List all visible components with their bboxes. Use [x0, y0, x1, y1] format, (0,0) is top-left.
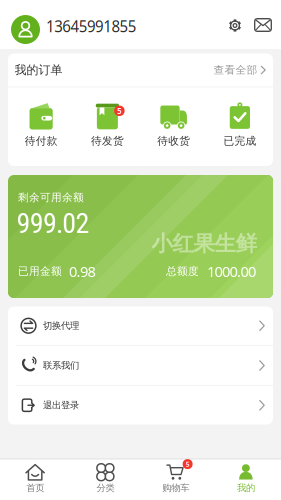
button[interactable]: 查看全部: [213, 63, 266, 76]
staticText: 购物车: [162, 482, 189, 494]
staticText: 已用金额: [18, 265, 62, 278]
staticText: 联系我们: [43, 360, 79, 371]
button[interactable]: Messages: [254, 17, 272, 31]
staticText: 首页: [26, 482, 44, 494]
button[interactable]: 首页: [0, 459, 70, 494]
staticText: 999.02: [16, 207, 89, 240]
button[interactable]: Settings: [228, 17, 242, 31]
staticText: 分类: [96, 482, 114, 494]
button[interactable]: 切换代理: [8, 306, 273, 345]
staticText: 我的订单: [14, 63, 62, 77]
button[interactable]: 退出登录: [8, 386, 273, 425]
staticText: 13645991855: [46, 15, 142, 37]
staticText: 总额度: [166, 265, 199, 278]
button[interactable]: 5: [74, 101, 140, 147]
button[interactable]: 联系我们: [8, 346, 273, 385]
staticText: 5: [186, 460, 190, 469]
staticText: 待发货: [91, 134, 124, 147]
staticText: 待付款: [25, 134, 58, 147]
staticText: 待收货: [157, 134, 190, 147]
staticText: 查看全部: [213, 63, 257, 76]
button[interactable]: 分类: [70, 459, 140, 494]
staticText: 我的: [237, 482, 255, 494]
staticText: 5: [117, 105, 122, 116]
staticText: 切换代理: [43, 320, 79, 331]
button[interactable]: 我的: [211, 459, 281, 494]
button[interactable]: 待收货: [140, 101, 207, 147]
staticText: 剩余可用余额: [18, 191, 84, 204]
staticText: 1000.00: [207, 261, 256, 281]
button[interactable]: 待付款: [8, 101, 74, 147]
button[interactable]: 13645991855: [11, 10, 142, 39]
staticText: 小红果生鲜: [151, 230, 256, 257]
staticText: 已完成: [223, 134, 256, 147]
staticText: 退出登录: [43, 399, 79, 411]
button[interactable]: 5: [140, 459, 211, 494]
button[interactable]: 已完成: [207, 101, 273, 147]
staticText: 0.98: [69, 261, 95, 281]
